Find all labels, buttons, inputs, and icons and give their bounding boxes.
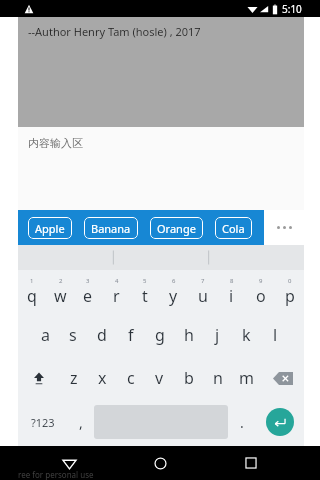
button[interactable]: Banana [84,217,138,239]
staticText: p [285,285,295,307]
staticText: g [155,324,165,346]
button[interactable]: . [228,400,255,444]
staticText: k [242,324,251,346]
button[interactable]: j [203,313,232,356]
staticText: w [54,285,67,307]
button[interactable]: x [88,356,116,400]
button[interactable]: , [67,400,94,444]
staticText: 3 [86,277,90,285]
staticText: ?123 [31,415,55,430]
staticText: v [155,367,164,389]
button[interactable]: 8 [217,270,246,313]
button[interactable]: 6 [159,270,188,313]
staticText: 2 [59,277,63,285]
staticText: . [240,413,244,432]
staticText: ree for personal use [18,469,94,480]
button[interactable]: 5 [130,270,159,313]
staticText: e [83,285,93,307]
staticText: o [256,285,266,307]
button[interactable]: Backspace [261,356,304,400]
staticText: f [128,324,134,346]
staticText: n [213,367,223,389]
staticText: j [215,324,220,346]
staticText: m [239,367,254,389]
staticText: x [98,367,107,389]
staticText: 0 [288,277,292,285]
staticText: a [41,324,50,346]
button[interactable]: 1 [18,270,46,313]
button[interactable]: 3 [74,270,102,313]
button[interactable]: d [87,313,116,356]
button[interactable]: Orange [150,217,203,239]
staticText: d [97,324,107,346]
button[interactable]: 2 [46,270,74,313]
button[interactable]: v [145,356,174,400]
staticText: Apple [35,221,65,236]
staticText: , [79,413,83,432]
button[interactable]: Apple [28,217,72,239]
button[interactable]: s [59,313,87,356]
button[interactable]: m [232,356,261,400]
staticText: 6 [172,277,176,285]
button[interactable]: 7 [188,270,217,313]
button[interactable]: f [116,313,145,356]
staticText: 4 [115,277,119,285]
staticText: t [142,285,148,307]
button[interactable]: c [116,356,145,400]
staticText: i [229,285,234,307]
button[interactable]: Recent apps [229,446,273,480]
button[interactable]: b [174,356,203,400]
staticText: h [184,324,194,346]
button[interactable]: g [145,313,174,356]
button[interactable]: h [174,313,203,356]
button[interactable]: 9 [246,270,275,313]
staticText: s [69,324,77,346]
staticText: 7 [201,277,205,285]
staticText: q [27,285,37,307]
staticText: Cola [222,221,245,236]
staticText: l [273,324,278,346]
button[interactable]: Home [138,446,182,480]
staticText: 9 [259,277,263,285]
staticText: 5:10 [282,2,302,16]
button[interactable]: a [31,313,59,356]
staticText: y [169,285,178,307]
button[interactable]: Back [47,446,91,480]
button[interactable]: 0 [275,270,304,313]
button[interactable]: Enter [266,408,294,436]
staticText: 8 [230,277,234,285]
staticText: b [184,367,194,389]
button[interactable]: n [203,356,232,400]
staticText: Orange [157,221,196,236]
button[interactable]: ?123 [18,400,67,444]
button[interactable]: 内容输入区 [18,127,304,210]
button[interactable]: Cola [215,217,252,239]
button[interactable]: l [261,313,290,356]
staticText: 5 [143,277,147,285]
staticText: r [113,285,120,307]
staticText: u [198,285,208,307]
button[interactable]: k [232,313,261,356]
button[interactable]: Shift [18,356,60,400]
staticText: --Author Henry Tam (hosle) , 2017 [28,24,201,39]
staticText: c [127,367,135,389]
staticText: 1 [30,277,34,285]
button[interactable]: More options [264,210,304,245]
staticText: z [70,367,78,389]
staticText: 内容输入区 [28,136,83,150]
staticText: Banana [91,221,131,236]
button[interactable]: 4 [102,270,130,313]
button[interactable]: z [60,356,88,400]
